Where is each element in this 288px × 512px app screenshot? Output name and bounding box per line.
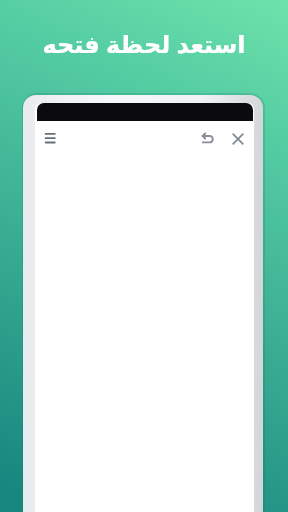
button[interactable]: [227, 128, 249, 150]
staticText: استعد لحظة فتحه: [42, 27, 246, 60]
button[interactable]: [41, 129, 63, 151]
button[interactable]: [197, 128, 219, 150]
